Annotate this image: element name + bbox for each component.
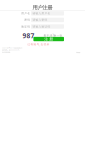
staticText: 已有账号,去登录 <box>27 43 49 46</box>
staticText: 看不清?换一张 <box>44 34 63 37</box>
button[interactable]: 注 册 <box>33 37 64 41</box>
staticText: 987 <box>23 31 35 40</box>
staticText: 注 册 <box>44 37 53 41</box>
staticText: 用户名 <box>21 12 30 15</box>
staticText: 请输入验证码 <box>33 25 51 28</box>
staticText: 技术支持: 某某网络 <box>2 51 10 53</box>
staticText: 请输入用户名 <box>33 12 51 15</box>
button[interactable]: 已有账号,去登录 <box>27 43 49 46</box>
staticText: 密码 <box>24 18 30 22</box>
staticText: 用户注册 <box>32 4 52 11</box>
staticText: Copyright © 2019 某某科技有限公司 <box>2 47 22 49</box>
staticText: 验证码 <box>21 25 30 28</box>
staticText: 请输入密码 <box>33 18 48 22</box>
staticText: 版权所有 粤ICP备00000000号-1 <box>2 49 20 51</box>
